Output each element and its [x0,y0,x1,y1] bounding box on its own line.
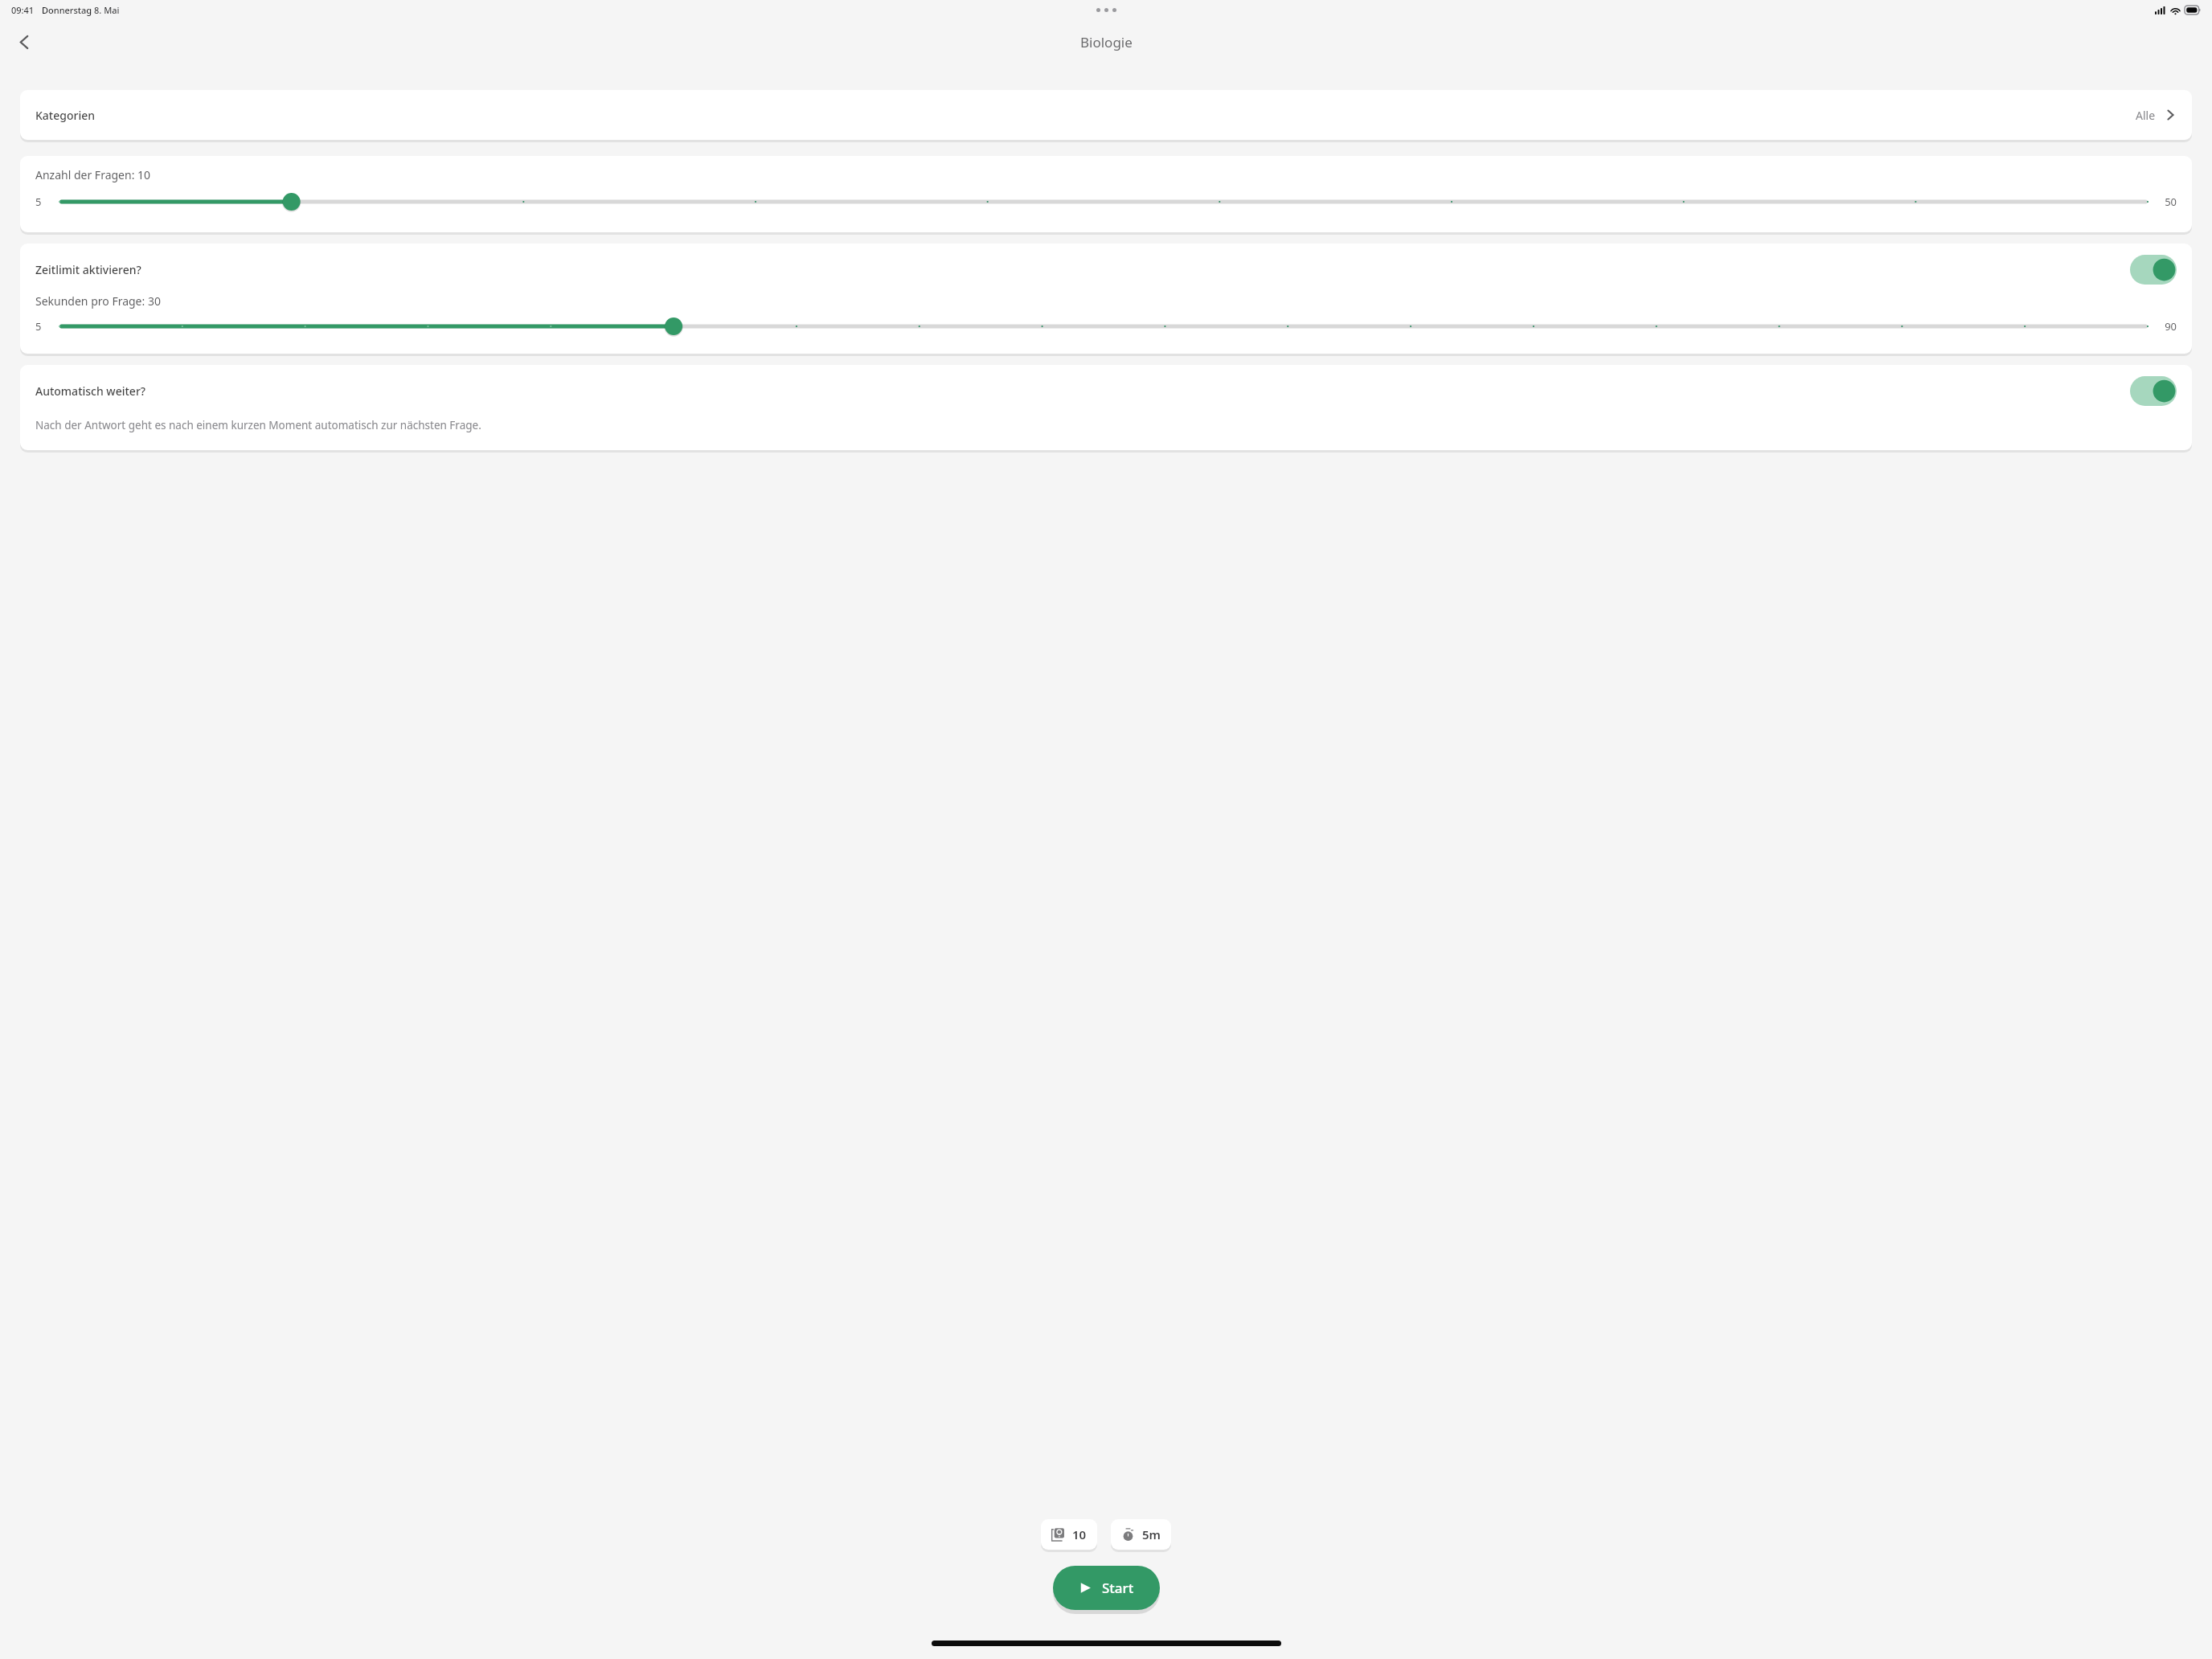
staticText: Donnerstag 8. Mai [42,4,120,16]
staticText: Nach der Antwort geht es nach einem kurz… [35,418,481,432]
staticText: Start [1102,1579,1134,1597]
button[interactable]: Zurück [6,24,42,59]
staticText: 5m [1142,1526,1161,1542]
staticText: Kategorien [35,108,96,123]
staticText: Alle [2136,108,2156,123]
button[interactable]: Start [1053,1566,1160,1610]
staticText: Zeitlimit aktivieren? [35,262,141,277]
staticText: 10 [1072,1526,1087,1542]
staticText: Sekunden pro Frage: 30 [35,293,161,309]
button[interactable]: Fragen [1041,1519,1097,1550]
button[interactable]: Automatisch weiter [2130,376,2177,406]
staticText: 09:41 [11,4,35,16]
staticText: 90 [2149,319,2177,334]
staticText: 50 [2149,195,2177,209]
button[interactable] [58,312,2149,341]
staticText: 5 [35,319,58,334]
staticText: Anzahl der Fragen: 10 [35,167,151,182]
button[interactable]: Kategorien [20,90,2192,140]
button[interactable] [58,187,2149,216]
staticText: 5 [35,195,58,209]
staticText: Automatisch weiter? [35,383,146,399]
button[interactable]: Dauer [1111,1519,1171,1550]
button[interactable]: Zeitlimit aktivieren [2130,255,2177,285]
staticText: Biologie [1080,33,1133,51]
